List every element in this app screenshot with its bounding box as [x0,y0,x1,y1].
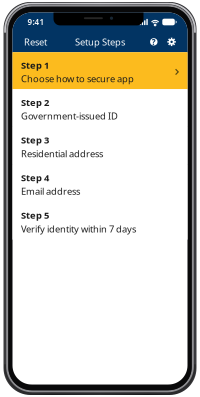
button[interactable]: Step 3 [12,127,187,164]
staticText: Residential address [21,147,103,160]
button[interactable]: Step 1 [12,52,187,89]
staticText: Choose how to secure app [21,72,134,85]
button[interactable]: Settings [167,38,176,46]
button[interactable]: Step 2 [12,89,187,127]
staticText: Step 4 [21,171,49,184]
button[interactable]: Help [150,38,158,46]
staticText: Step 3 [21,134,49,146]
staticText: Setup Steps [75,36,125,48]
staticText: Government-issued ID [21,110,118,122]
staticText: 9:41 [27,17,44,27]
staticText: Email address [21,185,80,197]
staticText: Verify identity within 7 days [21,223,136,235]
button[interactable]: Step 4 [12,164,187,202]
button[interactable]: Step 5 [12,202,187,240]
staticText: Step 1 [21,59,49,71]
staticText: Step 2 [21,96,49,109]
staticText: Reset [24,36,47,48]
staticText: Step 5 [21,209,49,221]
button[interactable]: Reset [24,32,51,52]
staticText: ? [152,36,156,47]
